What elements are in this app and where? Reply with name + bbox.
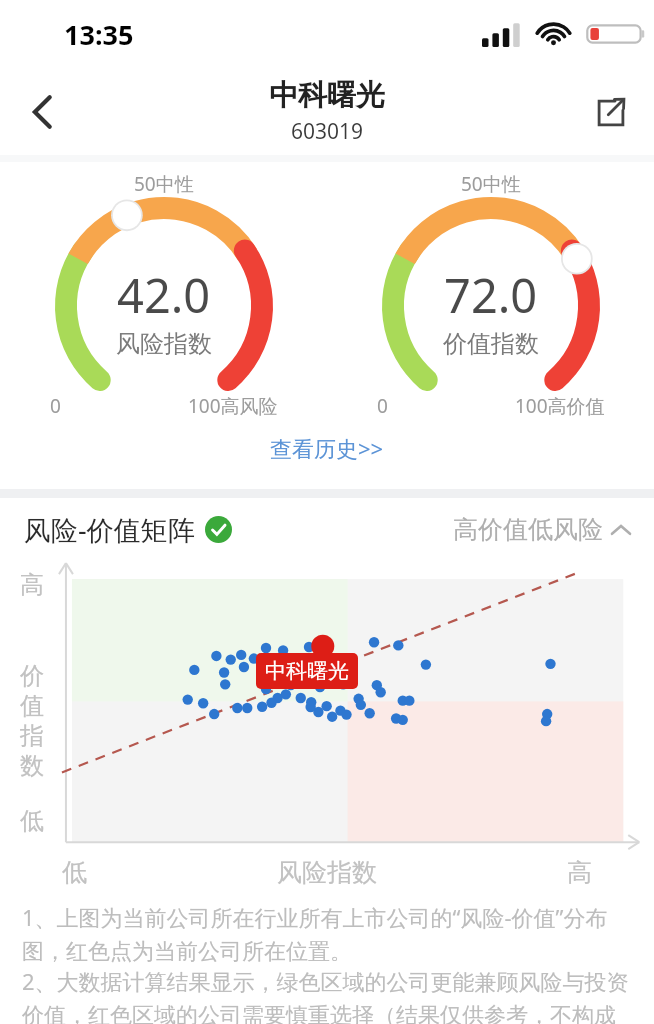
staticText: 查看历史>> (270, 433, 384, 463)
staticText: 42.0 (117, 263, 211, 327)
staticText: 603019 (291, 117, 364, 146)
staticText: 风险指数 (116, 329, 212, 359)
staticText: 价值指数 (443, 329, 539, 359)
button[interactable]: 查看历史>> (0, 427, 654, 489)
staticText: 1、上图为当前公司所在行业所有上市公司的“风险-价值”分布图，红色点为当前公司所… (22, 902, 632, 966)
staticText: 高 (567, 857, 592, 888)
button[interactable]: 中科曙光 (256, 653, 358, 689)
staticText: 高价值低风险 (453, 514, 603, 545)
staticText: 13:35 (64, 16, 134, 53)
staticText: 72.0 (444, 263, 538, 327)
staticText: 50中性 (134, 171, 194, 197)
staticText: 低 (20, 806, 44, 836)
staticText: 风险-价值矩阵 (24, 511, 195, 548)
button[interactable]: Share (568, 68, 654, 155)
staticText: 低 (62, 857, 87, 888)
staticText: 中科曙光 (265, 658, 349, 684)
button[interactable]: 高价值低风险 (453, 514, 630, 545)
staticText: 风险指数 (277, 857, 377, 888)
staticText: 2、大数据计算结果显示，绿色区域的公司更能兼顾风险与投资价值，红色区域的公司需要… (22, 966, 632, 1024)
staticText: 中科曙光 (269, 77, 385, 114)
staticText: 50中性 (461, 171, 521, 197)
staticText: 值 (20, 691, 44, 721)
staticText: 100高风险 (188, 393, 278, 419)
staticText: 指 (20, 721, 44, 751)
staticText: 价 (20, 661, 44, 691)
staticText: 高 (20, 570, 44, 600)
staticText: 100高价值 (515, 393, 605, 419)
staticText: 0 (50, 393, 61, 419)
staticText: 数 (20, 751, 44, 781)
staticText: 0 (377, 393, 388, 419)
button[interactable]: Back (0, 68, 86, 155)
